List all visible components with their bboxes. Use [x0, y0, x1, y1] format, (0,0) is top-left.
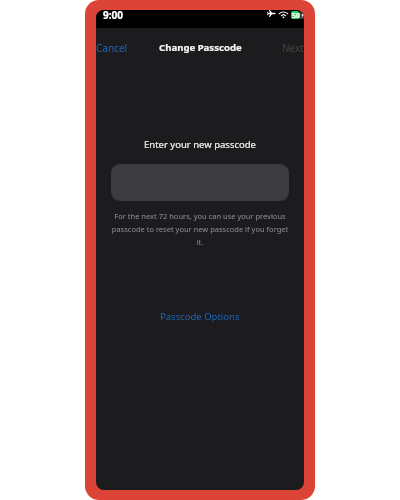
staticText: Passcode Options: [160, 310, 240, 323]
button[interactable]: Passcode Options: [156, 306, 244, 327]
staticText: 50: [292, 11, 301, 19]
staticText: For the next 72 hours, you can use your …: [111, 211, 289, 247]
button[interactable]: Cancel: [96, 38, 128, 58]
staticText: Cancel: [96, 41, 128, 55]
button[interactable]: Passcode entry field: [111, 164, 289, 201]
staticText: 9:00: [103, 10, 123, 22]
staticText: Enter your new passcode: [144, 138, 256, 151]
staticText: Next: [282, 41, 304, 55]
other: Wi-Fi: [279, 11, 288, 18]
other: Airplane mode: [267, 10, 276, 17]
other: Battery 50 percent charging: [291, 11, 304, 19]
button[interactable]: Next: [282, 38, 304, 58]
staticText: Change Passcode: [159, 41, 242, 54]
